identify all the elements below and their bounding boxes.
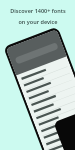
staticText: on your device bbox=[18, 18, 58, 25]
staticText: Discover 1400+ fonts bbox=[10, 7, 66, 14]
